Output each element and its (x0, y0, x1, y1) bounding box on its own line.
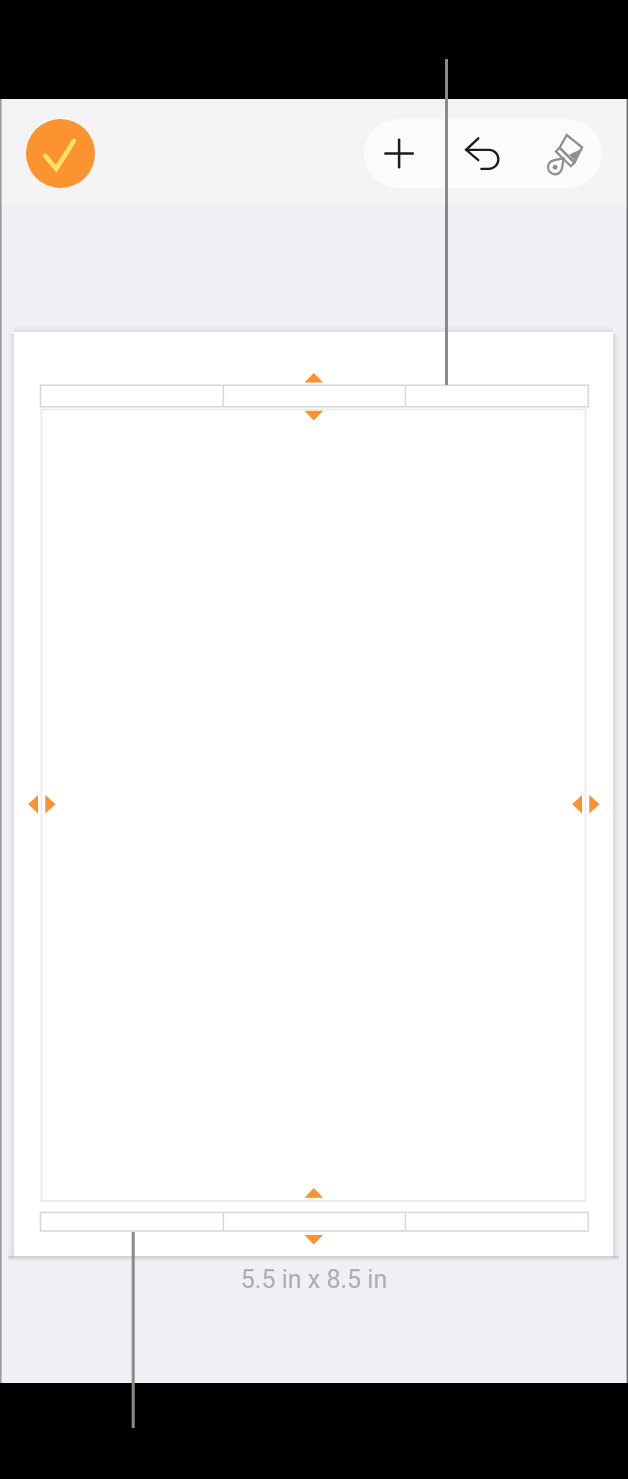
button[interactable]: Format (520, 119, 602, 188)
button[interactable]: Undo (438, 119, 520, 188)
button[interactable]: Add (364, 119, 438, 188)
staticText: 5.5 in x 8.5 in (0, 1265, 628, 1294)
button[interactable]: Done (26, 119, 95, 188)
